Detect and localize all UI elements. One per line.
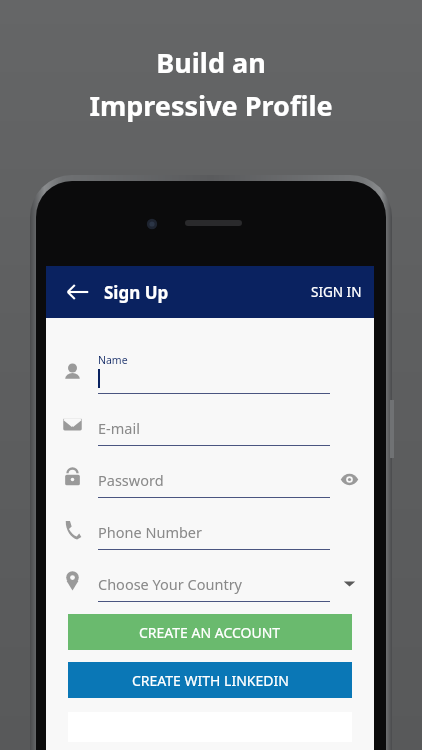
button[interactable]: CREATE AN ACCOUNT — [68, 614, 352, 650]
staticText: Choose Your Country — [98, 574, 243, 594]
button[interactable]: Phone Number — [46, 498, 374, 550]
staticText: Build an — [156, 44, 266, 81]
button[interactable]: Back — [62, 276, 94, 308]
button[interactable]: CREATE WITH LINKEDIN — [68, 662, 352, 698]
staticText: E-mail — [98, 418, 140, 438]
button[interactable]: Choose Your Country — [46, 550, 374, 602]
staticText: Name — [98, 353, 128, 367]
button[interactable]: Password — [46, 446, 374, 498]
button[interactable]: Toggle — [340, 574, 359, 593]
staticText: CREATE AN ACCOUNT — [139, 623, 281, 642]
button[interactable]: E-mail — [46, 394, 374, 446]
staticText: Sign Up — [104, 281, 169, 304]
button[interactable]: SIGN IN — [299, 273, 374, 311]
button[interactable]: Toggle — [340, 470, 359, 489]
staticText: Phone Number — [98, 522, 203, 542]
staticText: Password — [98, 470, 164, 490]
staticText: CREATE WITH LINKEDIN — [132, 671, 289, 690]
staticText: Impressive Profile — [89, 87, 333, 124]
button[interactable]: Name — [46, 336, 374, 394]
staticText: SIGN IN — [311, 283, 362, 301]
